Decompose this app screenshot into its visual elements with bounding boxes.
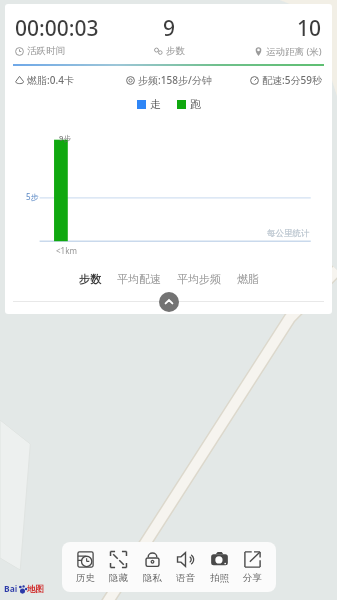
staticText: 分享 xyxy=(243,572,262,584)
staticText: 运动距离 (米) xyxy=(266,45,322,58)
staticText: 语音 xyxy=(176,572,195,584)
staticText: 步频:158步/分钟 xyxy=(138,73,212,87)
staticText: 历史 xyxy=(76,572,95,584)
staticText: 步数 xyxy=(79,272,101,286)
staticText: 地图 xyxy=(27,584,44,595)
staticText: 跑 xyxy=(190,97,201,111)
staticText: 10 xyxy=(297,14,322,43)
staticText: 燃脂 xyxy=(237,272,259,286)
staticText: 9 xyxy=(163,14,176,43)
staticText: 走 xyxy=(150,97,161,111)
staticText: <1km xyxy=(56,245,77,256)
button[interactable]: Collapse xyxy=(159,292,179,312)
button[interactable]: Share xyxy=(238,548,267,586)
staticText: 配速:5分59秒 xyxy=(262,73,322,87)
staticText: 5步 xyxy=(26,191,39,202)
button[interactable]: Voice xyxy=(171,548,200,586)
button[interactable]: History xyxy=(71,548,100,586)
staticText: 每公里统计 xyxy=(267,228,310,239)
button[interactable]: Hide xyxy=(104,548,133,586)
staticText: 隐藏 xyxy=(109,572,128,584)
staticText: 燃脂:0.4卡 xyxy=(27,73,74,87)
staticText: 平均配速 xyxy=(117,272,161,286)
staticText: 隐私 xyxy=(143,572,162,584)
button[interactable]: 平均配速 xyxy=(112,269,166,289)
button[interactable]: 燃脂 xyxy=(232,269,264,289)
staticText: 平均步频 xyxy=(177,272,221,286)
staticText: 步数 xyxy=(166,45,185,57)
staticText: 9步 xyxy=(59,133,71,143)
button[interactable]: 步数 xyxy=(74,269,106,289)
button[interactable]: Camera xyxy=(205,548,234,586)
button[interactable]: Privacy xyxy=(138,548,167,586)
staticText: Bai xyxy=(4,583,18,595)
staticText: 活跃时间 xyxy=(27,45,65,57)
button[interactable]: 平均步频 xyxy=(172,269,226,289)
staticText: 拍照 xyxy=(210,572,229,584)
staticText: 00:00:03 xyxy=(15,14,99,43)
